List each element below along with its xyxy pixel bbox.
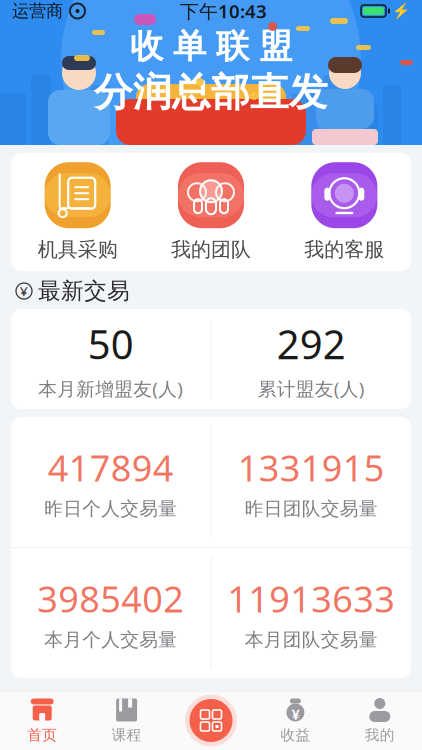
- button[interactable]: 首页: [0, 691, 84, 750]
- staticText: 我的: [365, 726, 395, 744]
- staticText: 1331915: [238, 444, 385, 491]
- staticText: 昨日团队交易量: [245, 497, 378, 520]
- staticText: 292: [277, 317, 346, 370]
- button[interactable]: 扫一扫: [169, 691, 253, 750]
- staticText: 收益: [280, 726, 310, 744]
- staticText: 下午10:43: [180, 0, 267, 23]
- staticText: 运营商: [12, 0, 63, 22]
- staticText: 机具采购: [38, 237, 118, 262]
- staticText: 课程: [112, 726, 142, 744]
- staticText: 最新交易: [38, 277, 130, 305]
- button[interactable]: 机具采购: [11, 162, 144, 262]
- staticText: 本月团队交易量: [245, 628, 378, 651]
- staticText: ¥: [291, 704, 299, 724]
- staticText: 累计盟友(人): [258, 376, 365, 401]
- button[interactable]: 我的: [338, 691, 422, 750]
- staticText: 11913633: [227, 575, 395, 622]
- staticText: 50: [88, 317, 134, 370]
- staticText: ⚡: [392, 3, 410, 19]
- staticText: 417894: [48, 444, 174, 491]
- staticText: 分润总部直发: [94, 69, 328, 116]
- staticText: 我的客服: [304, 237, 384, 262]
- button[interactable]: ¥: [253, 691, 338, 750]
- staticText: 3985402: [37, 575, 184, 622]
- button[interactable]: 课程: [84, 691, 169, 750]
- staticText: ¥: [20, 282, 28, 300]
- staticText: 本月新增盟友(人): [38, 376, 183, 401]
- staticText: 本月个人交易量: [44, 628, 177, 651]
- staticText: 我的团队: [171, 237, 251, 262]
- button[interactable]: 我的团队: [144, 162, 278, 262]
- staticText: 收 单 联 盟: [130, 26, 292, 67]
- staticText: 首页: [27, 726, 57, 744]
- button[interactable]: 我的客服: [278, 162, 411, 262]
- staticText: 昨日个人交易量: [44, 497, 177, 520]
